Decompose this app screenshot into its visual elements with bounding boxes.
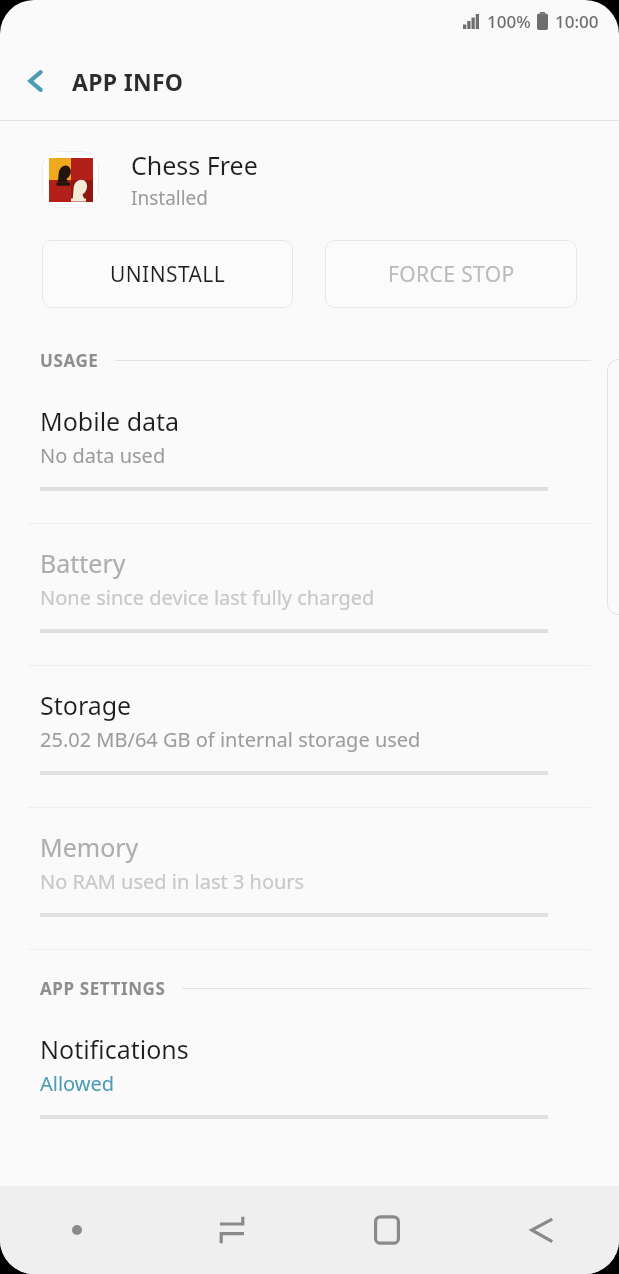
- button[interactable]: Back: [464, 1186, 619, 1274]
- staticText: Notifications: [40, 1032, 189, 1066]
- staticText: No RAM used in last 3 hours: [40, 868, 305, 895]
- staticText: Chess Free: [131, 148, 258, 182]
- staticText: Allowed: [40, 1070, 115, 1097]
- staticText: Mobile data: [40, 404, 180, 438]
- staticText: Installed: [131, 185, 209, 211]
- button[interactable]: Battery: [0, 524, 619, 633]
- staticText: 25.02 MB/64 GB of internal storage used: [40, 726, 421, 753]
- staticText: Storage: [40, 688, 132, 722]
- staticText: USAGE: [40, 349, 99, 372]
- button[interactable]: UNINSTALL: [42, 240, 293, 308]
- button[interactable]: FORCE STOP: [325, 240, 577, 308]
- button[interactable]: Notifications: [0, 1010, 619, 1119]
- button[interactable]: Chess Free: [42, 143, 577, 215]
- staticText: Battery: [40, 546, 126, 580]
- staticText: 10:00: [555, 10, 599, 33]
- staticText: UNINSTALL: [110, 260, 226, 289]
- staticText: None since device last fully charged: [40, 584, 375, 611]
- staticText: APP SETTINGS: [40, 977, 166, 1000]
- button[interactable]: Home: [309, 1186, 464, 1274]
- staticText: 100%: [487, 10, 531, 33]
- button[interactable]: Recents: [154, 1186, 309, 1274]
- staticText: APP INFO: [72, 66, 184, 97]
- staticText: FORCE STOP: [388, 260, 515, 289]
- button[interactable]: Storage: [0, 666, 619, 775]
- button[interactable]: Memory: [0, 808, 619, 917]
- staticText: Memory: [40, 830, 139, 864]
- button[interactable]: Back: [0, 45, 72, 117]
- button[interactable]: Assist: [0, 1186, 154, 1274]
- staticText: No data used: [40, 442, 166, 469]
- button[interactable]: Mobile data: [0, 382, 619, 491]
